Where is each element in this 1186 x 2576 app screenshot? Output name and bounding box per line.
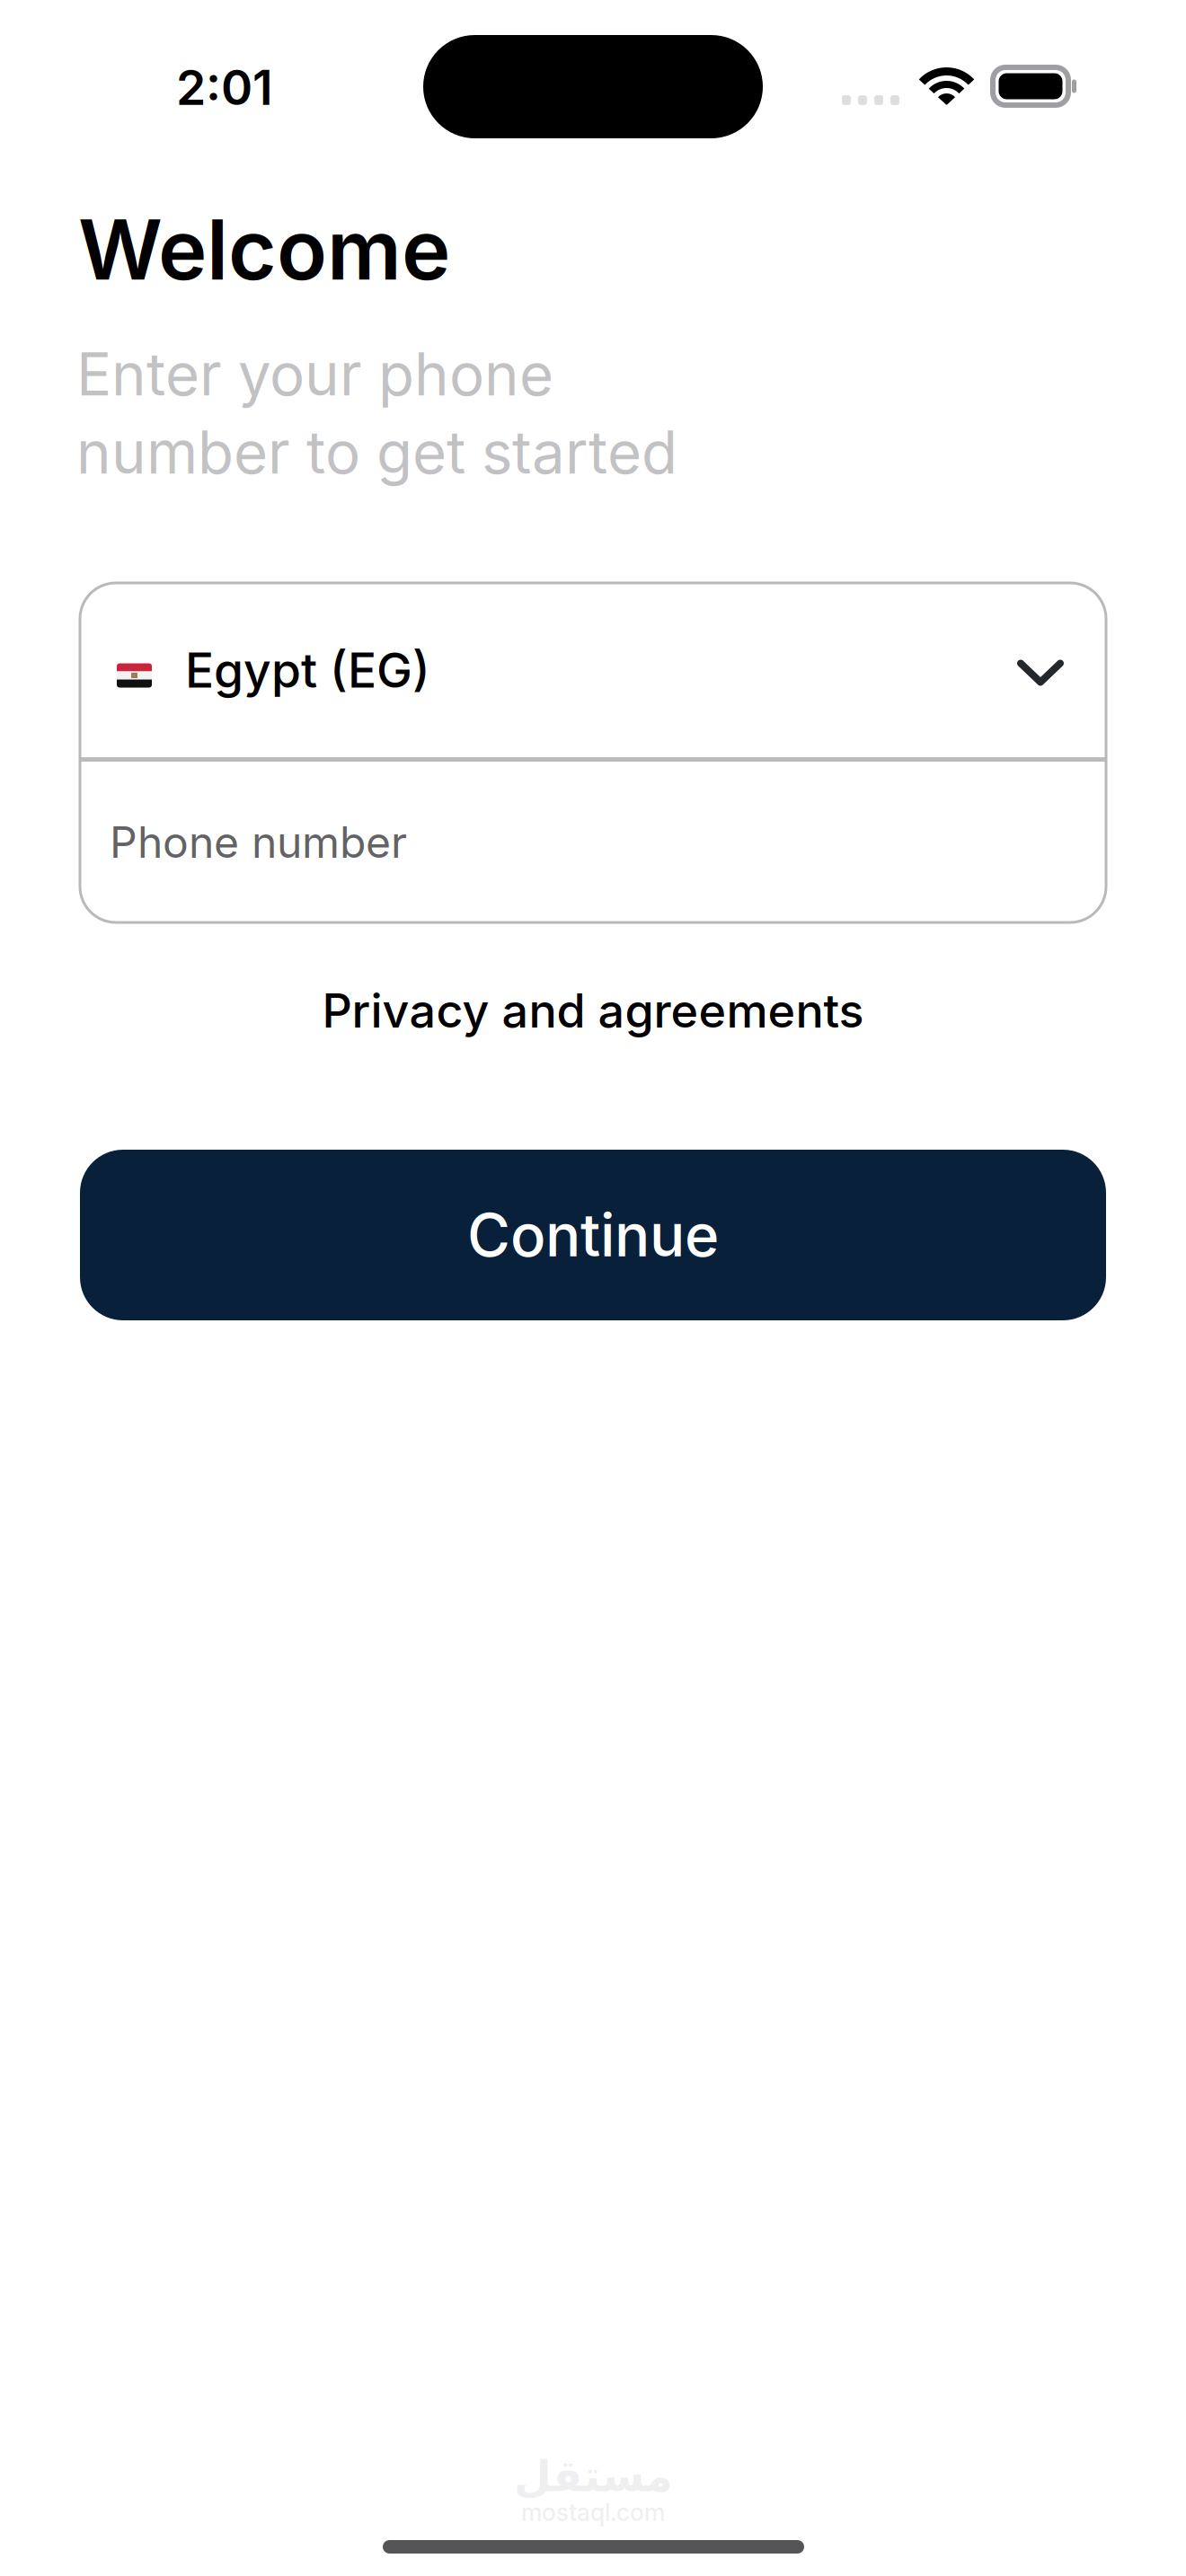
staticText: Continue [467, 1200, 719, 1270]
staticText: number to get started [76, 417, 677, 488]
staticText: 2:01 [176, 58, 273, 116]
button[interactable]: Continue [80, 1150, 1106, 1320]
staticText: Egypt (EG) [185, 641, 430, 699]
staticText: Phone number [110, 816, 407, 868]
button[interactable]: Phone number [80, 762, 1106, 922]
staticText: Enter your phone [76, 339, 553, 410]
button[interactable]: Egypt (EG) [80, 583, 1106, 757]
staticText: Welcome [78, 199, 450, 299]
staticText: مستقل [513, 2451, 673, 2501]
staticText: Privacy and agreements [322, 982, 864, 1039]
staticText: mostaql.com [521, 2498, 665, 2527]
button[interactable]: Privacy and agreements [80, 977, 1106, 1044]
